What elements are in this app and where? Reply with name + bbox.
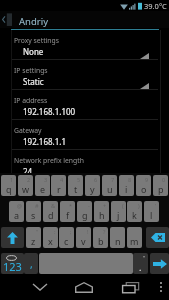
staticText: 192.168.1.100 <box>23 106 76 117</box>
staticText: z <box>31 235 36 247</box>
button[interactable]: ; <box>59 227 74 248</box>
staticText: w <box>22 183 30 195</box>
button[interactable]: 0 <box>153 175 168 196</box>
staticText: 39.0°C <box>144 1 167 11</box>
button[interactable]: Recent apps <box>109 274 151 300</box>
staticText: IP settings <box>14 66 48 75</box>
button[interactable]: - <box>77 201 92 222</box>
button[interactable]: 4 <box>51 175 66 196</box>
button[interactable]: Space <box>39 253 133 274</box>
staticText: Gateway <box>14 126 42 135</box>
staticText: y <box>90 183 95 195</box>
staticText: ? <box>103 228 106 235</box>
button[interactable]: IP address <box>12 90 160 120</box>
staticText: e <box>40 183 46 195</box>
staticText: Network prefix length <box>14 156 84 165</box>
staticText: 123 <box>3 259 22 274</box>
button[interactable]: 5 <box>68 175 83 196</box>
staticText: n <box>115 235 121 247</box>
staticText: IP address <box>14 96 48 105</box>
staticText: : <box>54 228 56 235</box>
staticText: @ <box>17 202 22 209</box>
staticText: 1 <box>10 176 14 183</box>
button[interactable]: 1 <box>1 175 16 196</box>
button[interactable]: Enter <box>150 253 169 274</box>
button[interactable]: ! <box>76 227 91 248</box>
staticText: s <box>31 209 36 221</box>
button[interactable]: Shift <box>1 227 24 248</box>
button[interactable]: m <box>127 227 142 248</box>
button[interactable]: & <box>43 201 58 222</box>
button[interactable]: * <box>60 201 75 222</box>
button[interactable]: ) <box>127 201 142 222</box>
button[interactable]: ' <box>144 201 159 222</box>
button[interactable]: ? <box>93 227 108 248</box>
button[interactable]: 9 <box>136 175 151 196</box>
staticText: o <box>141 183 147 195</box>
staticText: r <box>57 183 61 195</box>
staticText: 192.168.1.1 <box>23 136 67 147</box>
staticText: t <box>74 183 78 195</box>
staticText: u <box>107 183 113 195</box>
button[interactable]: Home <box>63 274 105 300</box>
staticText: g <box>82 209 88 221</box>
staticText: * <box>69 202 73 209</box>
staticText: , <box>30 257 33 271</box>
staticText: f <box>66 209 70 221</box>
staticText: x <box>48 235 53 247</box>
staticText: None <box>23 46 44 57</box>
button[interactable]: Proxy settings <box>12 30 160 60</box>
staticText: m <box>130 235 139 247</box>
staticText: p <box>158 183 164 195</box>
staticText: " <box>36 228 39 235</box>
staticText: 4 <box>60 176 64 183</box>
button[interactable]: 2 <box>18 175 33 196</box>
button[interactable]: 8 <box>119 175 134 196</box>
staticText: + <box>103 202 107 209</box>
staticText: h <box>99 209 105 221</box>
staticText: 9 <box>145 176 149 183</box>
button[interactable]: Voice input <box>24 253 38 274</box>
staticText: . <box>139 261 142 273</box>
button[interactable]: Network prefix length <box>12 150 160 180</box>
button[interactable]: More options <box>153 274 169 300</box>
button[interactable]: IP settings <box>12 60 160 90</box>
button[interactable]: Gateway <box>12 120 160 150</box>
staticText: Andriy <box>19 15 49 28</box>
staticText: ! <box>87 228 89 235</box>
button[interactable]: 6 <box>85 175 100 196</box>
staticText: 8 <box>128 176 132 183</box>
staticText: a <box>14 209 20 221</box>
button[interactable]: Back <box>17 274 63 300</box>
button[interactable]: ( <box>111 201 126 222</box>
button[interactable]: 3 <box>35 175 50 196</box>
button[interactable]: n <box>110 227 125 248</box>
button[interactable]: : <box>43 227 58 248</box>
staticText: q <box>6 183 12 195</box>
staticText: 3 <box>44 176 48 183</box>
staticText: d <box>48 209 54 221</box>
staticText: Proxy settings <box>14 36 59 45</box>
staticText: ) <box>138 202 140 209</box>
button[interactable]: " <box>133 253 148 274</box>
button[interactable]: " <box>26 227 41 248</box>
button[interactable]: Symbols <box>1 253 24 274</box>
staticText: # <box>35 202 39 209</box>
button[interactable]: @ <box>9 201 24 222</box>
button[interactable]: # <box>26 201 41 222</box>
button[interactable]: Navigate up <box>0 11 169 28</box>
staticText: Static <box>23 76 44 87</box>
staticText: i <box>125 183 128 195</box>
staticText: " <box>143 254 146 261</box>
button[interactable]: Delete <box>146 227 169 248</box>
button[interactable]: 7 <box>102 175 117 196</box>
staticText: ( <box>122 202 124 209</box>
staticText: 7 <box>111 176 115 183</box>
staticText: & <box>51 202 56 209</box>
button[interactable]: + <box>94 201 109 222</box>
staticText: c <box>64 235 69 247</box>
staticText: b <box>98 235 104 247</box>
staticText: 0 <box>162 176 166 183</box>
